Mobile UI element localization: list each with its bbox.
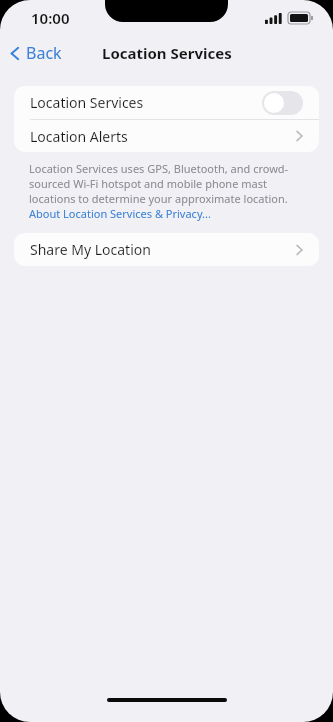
other: More [296, 130, 303, 142]
staticText: Location Services [102, 43, 232, 63]
other: More [296, 244, 303, 256]
button[interactable]: Location Alerts [14, 120, 319, 152]
staticText: Location Services [30, 93, 144, 112]
staticText: Location Alerts [30, 127, 128, 146]
other: Cellular signal [265, 13, 282, 24]
staticText: Share My Location [30, 240, 151, 259]
button[interactable]: Share My Location [14, 233, 319, 266]
button[interactable]: Location Services [14, 86, 319, 119]
staticText: 10:00 [31, 8, 70, 28]
button[interactable]: Back [0, 38, 70, 68]
button[interactable]: Location Services toggle [262, 91, 303, 115]
staticText: Location Services uses GPS, Bluetooth, a… [29, 161, 304, 221]
other: Battery [288, 12, 313, 24]
staticText: Back [26, 42, 62, 64]
